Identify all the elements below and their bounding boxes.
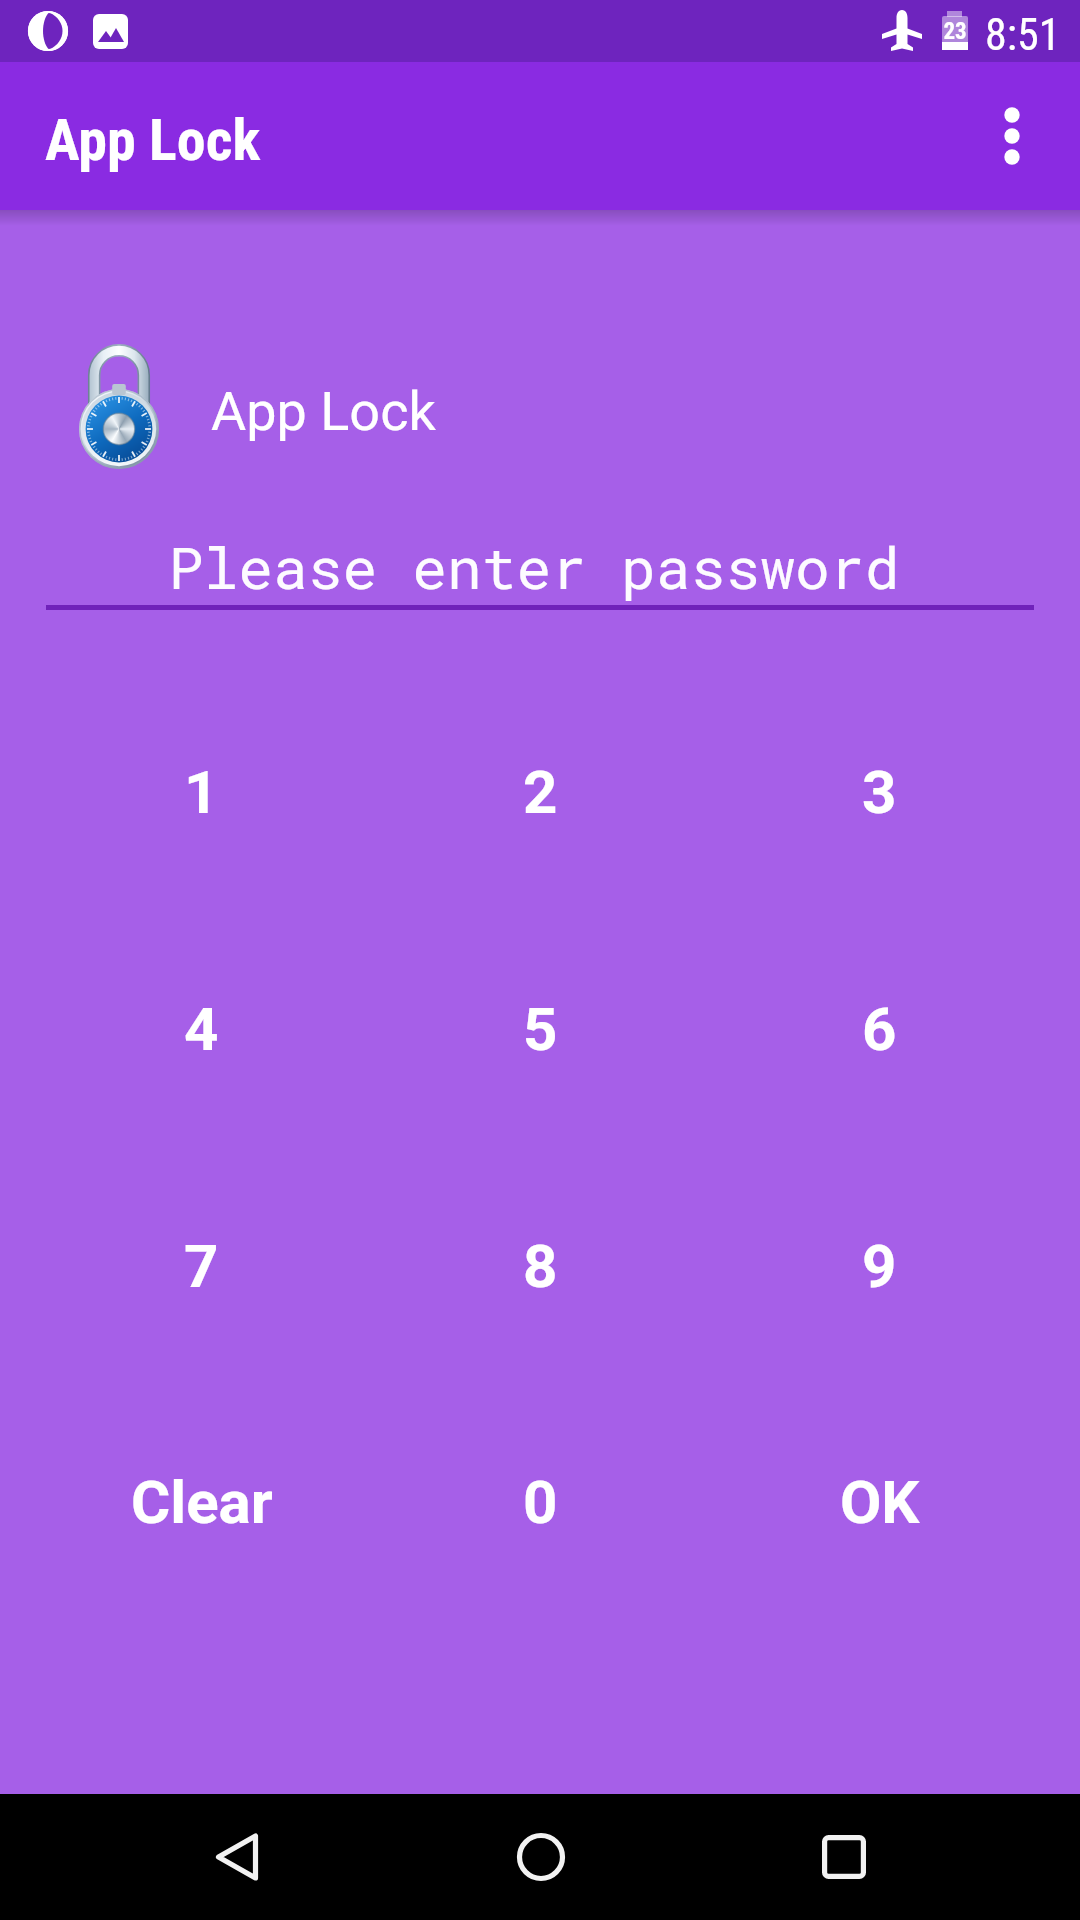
button[interactable]: 5 [371,929,710,1129]
staticText: 8:51 [985,9,1061,61]
button[interactable]: OK [710,1402,1049,1602]
staticText: 7 [184,1231,219,1301]
button[interactable]: 4 [32,929,371,1129]
staticText: 6 [862,994,897,1064]
staticText: 4 [184,994,219,1064]
button[interactable]: Recent apps [794,1794,894,1920]
staticText: 5 [523,994,558,1064]
button[interactable]: 9 [710,1166,1049,1366]
button[interactable]: Clear [32,1402,371,1602]
button[interactable]: More options [956,62,1068,210]
staticText: Clear [131,1467,273,1537]
staticText: App Lock [211,380,436,443]
staticText: 3 [862,757,897,827]
button[interactable]: 0 [371,1402,710,1602]
button[interactable]: 1 [32,692,371,892]
staticText: 8 [523,1231,558,1301]
staticText: 1 [184,757,219,827]
staticText: 23 [940,18,970,45]
button[interactable]: 6 [710,929,1049,1129]
staticText: 0 [523,1467,558,1537]
button[interactable]: 3 [710,692,1049,892]
button[interactable]: 8 [371,1166,710,1366]
button[interactable]: Home [491,1794,591,1920]
staticText: OK [840,1467,920,1537]
staticText: App Lock [45,106,261,174]
staticText: 2 [523,757,558,827]
staticText: Please enter password [0,528,1074,604]
button[interactable]: 2 [371,692,710,892]
button[interactable]: Back [187,1794,287,1920]
button[interactable]: 7 [32,1166,371,1366]
staticText: 9 [862,1231,897,1301]
